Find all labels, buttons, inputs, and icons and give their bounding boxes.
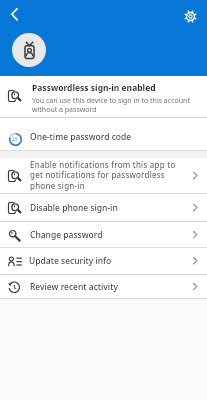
staticText: Update security info xyxy=(29,255,193,267)
button[interactable]: Change password xyxy=(0,222,207,247)
button[interactable]: Disable phone sign-in xyxy=(0,194,207,221)
staticText: One-time password code xyxy=(30,131,132,143)
staticText: Enable notifications from this app to ge… xyxy=(30,159,193,192)
button[interactable]: Passwordless sign-in enabled xyxy=(0,76,207,117)
staticText: Change password xyxy=(30,229,193,241)
button[interactable] xyxy=(4,4,24,24)
staticText: Review recent activity xyxy=(30,281,193,293)
button[interactable]: Review recent activity xyxy=(0,275,207,298)
staticText: You can use this device to sign in to th… xyxy=(32,96,190,114)
button[interactable] xyxy=(180,6,201,27)
staticText: Passwordless sign-in enabled xyxy=(32,82,156,94)
button[interactable]: 23 xyxy=(0,118,207,150)
button[interactable]: Enable notifications from this app to ge… xyxy=(0,158,207,193)
button[interactable]: Update security info xyxy=(0,248,207,274)
staticText: 23 xyxy=(12,136,18,142)
staticText: Disable phone sign-in xyxy=(30,202,193,214)
